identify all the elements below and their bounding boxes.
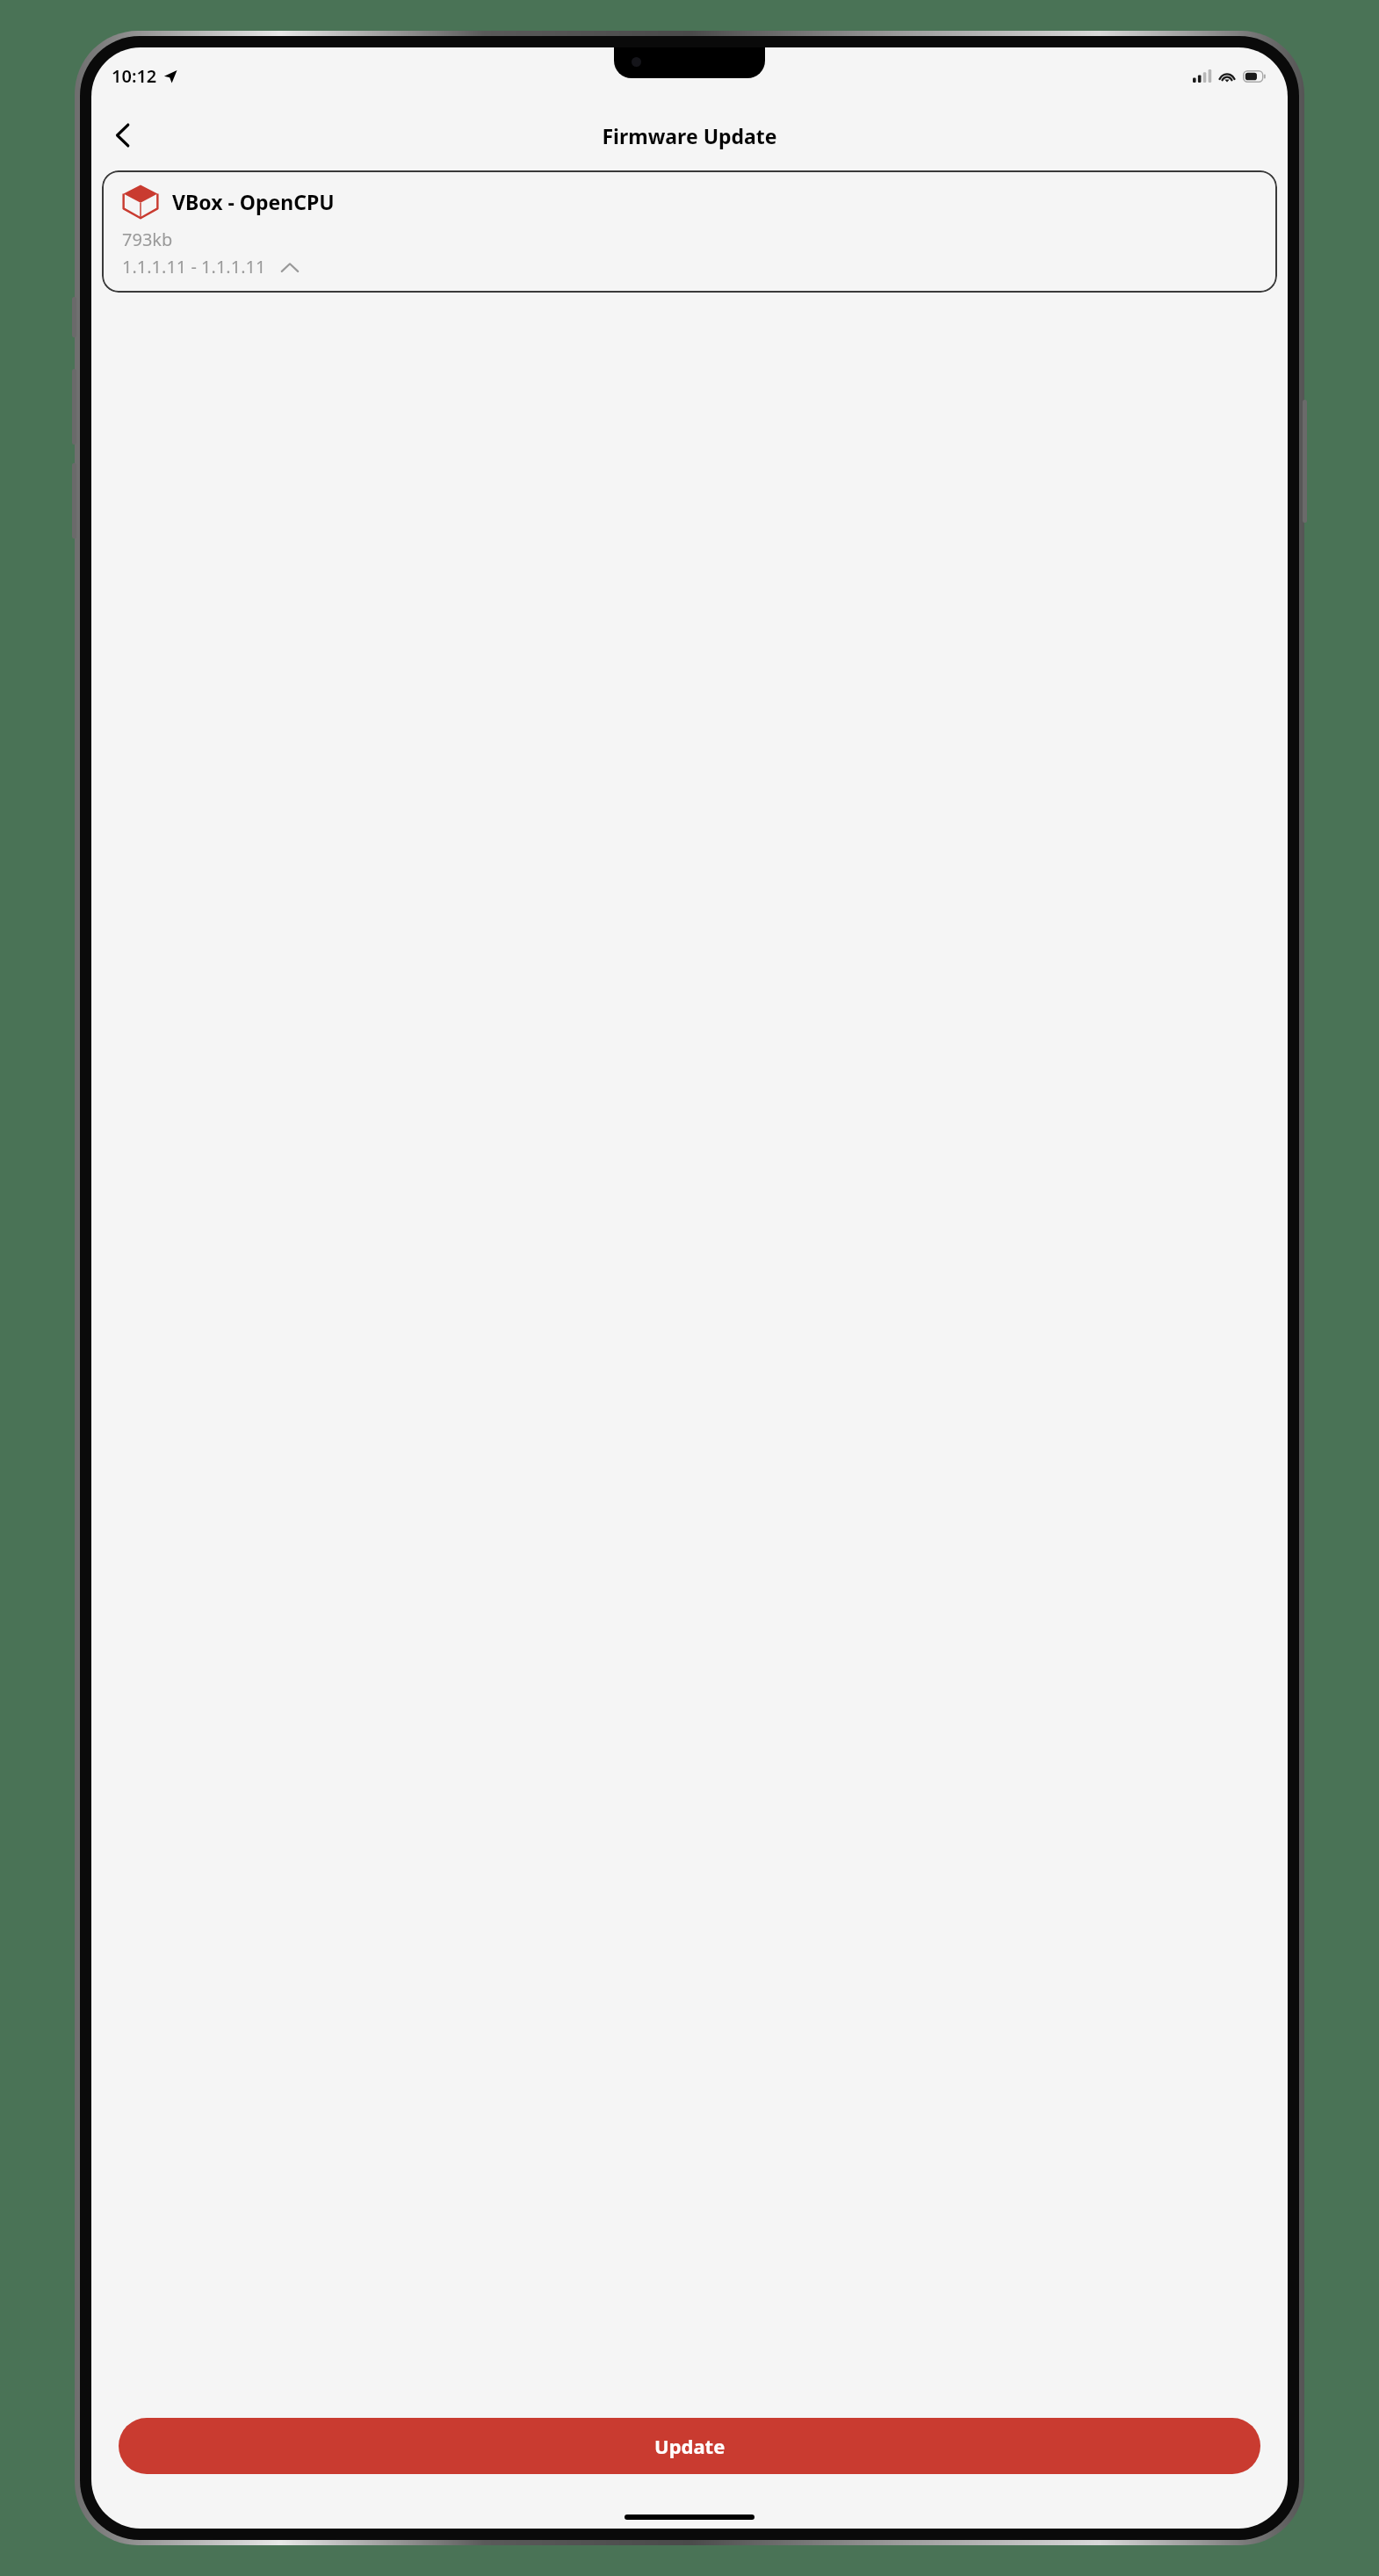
staticText: Firmware Update [602,122,777,149]
button[interactable]: Collapse [278,256,301,279]
staticText: VBox - OpenCPU [172,188,335,215]
button[interactable]: Update [119,2418,1260,2474]
staticText: 10:12 [112,64,157,88]
button[interactable]: Back [102,116,142,155]
staticText: Update [654,2433,726,2459]
staticText: 793kb [122,228,173,251]
staticText: 1.1.1.11 - 1.1.1.11 [122,255,266,279]
button[interactable]: VBox - OpenCPU [102,170,1277,293]
